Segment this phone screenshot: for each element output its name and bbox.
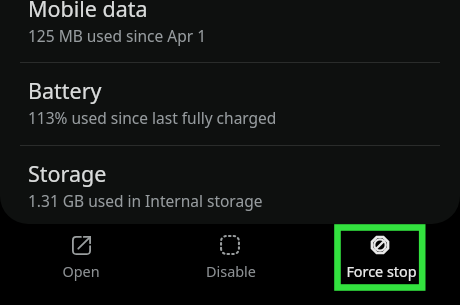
staticText: 1.31 GB used in Internal storage (28, 190, 263, 211)
button[interactable]: Disable (156, 224, 306, 305)
staticText: Disable (206, 262, 256, 282)
button[interactable]: Mobile data (0, 0, 460, 61)
other: Open (72, 236, 91, 255)
button[interactable]: Storage (0, 144, 460, 224)
staticText: Mobile data (28, 0, 148, 23)
staticText: 113% used since last fully charged (28, 107, 277, 128)
staticText: Battery (28, 76, 102, 105)
button[interactable]: Open (6, 224, 156, 305)
staticText: Storage (28, 159, 107, 188)
other: Disable (220, 235, 240, 255)
staticText: Open (62, 262, 100, 282)
staticText: Force stop (346, 262, 417, 282)
other: Force stop (370, 235, 390, 255)
button[interactable]: Force stop (306, 224, 456, 305)
button[interactable]: Battery (0, 61, 460, 143)
staticText: 125 MB used since Apr 1 (28, 25, 207, 46)
